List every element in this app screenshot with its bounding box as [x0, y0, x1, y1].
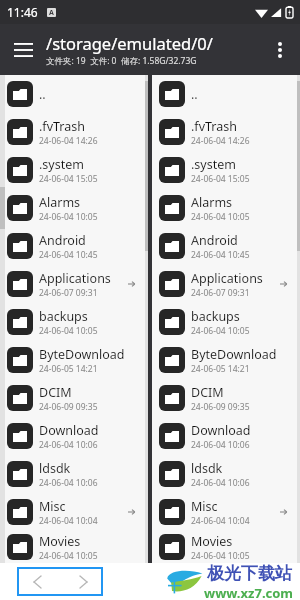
- button[interactable]: ..: [152, 75, 300, 113]
- staticText: ByteDownload: [191, 346, 277, 363]
- staticText: Download: [191, 422, 251, 439]
- staticText: Movies: [191, 533, 233, 550]
- staticText: backups: [191, 308, 240, 325]
- button[interactable]: Download: [152, 417, 300, 455]
- button[interactable]: backups: [0, 303, 148, 341]
- staticText: 24-06-04 15:05: [39, 173, 98, 185]
- staticText: 24-06-07 09:31: [191, 287, 250, 299]
- staticText: 24-06-04 10:05: [39, 325, 98, 337]
- staticText: 24-06-07 09:31: [39, 287, 98, 299]
- staticText: 24-06-04 14:26: [39, 135, 98, 147]
- staticText: ldsdk: [191, 460, 223, 477]
- staticText: 24-06-04 10:04: [39, 515, 98, 527]
- staticText: Android: [191, 232, 238, 249]
- staticText: .fvTrash: [39, 118, 85, 135]
- staticText: 24-06-04 15:05: [191, 173, 250, 185]
- button[interactable]: Open navigation drawer: [0, 27, 46, 73]
- staticText: Android: [39, 232, 86, 249]
- button[interactable]: More options: [260, 24, 300, 75]
- button[interactable]: Applications: [0, 265, 148, 303]
- button[interactable]: ldsdk: [152, 455, 300, 493]
- staticText: 24-06-05 14:21: [39, 363, 98, 375]
- button[interactable]: ByteDownload: [152, 341, 300, 379]
- button[interactable]: Back: [26, 571, 48, 593]
- staticText: 24-06-04 10:45: [191, 249, 250, 261]
- button[interactable]: Applications: [152, 265, 300, 303]
- button[interactable]: Back: [17, 567, 103, 596]
- staticText: .system: [191, 156, 236, 173]
- button[interactable]: Android: [152, 227, 300, 265]
- staticText: Misc: [191, 498, 218, 515]
- staticText: Movies: [39, 533, 81, 550]
- staticText: ByteDownload: [39, 346, 125, 363]
- staticText: 24-06-05 14:21: [191, 363, 250, 375]
- button[interactable]: Alarms: [152, 189, 300, 227]
- staticText: DCIM: [39, 384, 72, 401]
- button[interactable]: DCIM: [0, 379, 148, 417]
- staticText: Applications: [39, 270, 111, 287]
- button[interactable]: Alarms: [0, 189, 148, 227]
- staticText: DCIM: [191, 384, 224, 401]
- staticText: Alarms: [191, 194, 233, 211]
- staticText: 24-06-04 10:05: [191, 325, 250, 337]
- staticText: 文件夹: 19 文件: 0 储存: 1.58G/32.73G: [46, 55, 197, 67]
- staticText: 24-06-04 10:06: [191, 477, 250, 489]
- button[interactable]: ldsdk: [0, 455, 148, 493]
- staticText: ..: [191, 86, 198, 103]
- staticText: Download: [39, 422, 99, 439]
- staticText: ..: [39, 86, 46, 103]
- button[interactable]: .fvTrash: [152, 113, 300, 151]
- staticText: 24-06-04 10:06: [191, 439, 250, 451]
- button[interactable]: backups: [152, 303, 300, 341]
- staticText: 24-06-04 10:06: [39, 439, 98, 451]
- button[interactable]: Forward: [72, 571, 94, 593]
- staticText: 24-06-04 10:05: [191, 211, 250, 223]
- staticText: 极光下载站: [207, 563, 292, 584]
- staticText: 24-06-04 14:26: [191, 135, 250, 147]
- staticText: 24-06-04 10:05: [39, 211, 98, 223]
- button[interactable]: Misc: [152, 493, 300, 531]
- staticText: 24-06-04 10:06: [39, 477, 98, 489]
- button[interactable]: .system: [0, 151, 148, 189]
- staticText: Misc: [39, 498, 66, 515]
- staticText: 24-06-04 10:05: [39, 550, 98, 562]
- button[interactable]: DCIM: [152, 379, 300, 417]
- button[interactable]: ByteDownload: [0, 341, 148, 379]
- staticText: 24-06-09 09:35: [191, 401, 250, 413]
- staticText: 24-06-09 09:35: [39, 401, 98, 413]
- staticText: 11:46: [7, 4, 38, 20]
- staticText: backups: [39, 308, 88, 325]
- staticText: 24-06-04 10:45: [39, 249, 98, 261]
- staticText: 24-06-04 10:05: [191, 550, 250, 562]
- staticText: Applications: [191, 270, 263, 287]
- button[interactable]: .fvTrash: [0, 113, 148, 151]
- button[interactable]: ..: [0, 75, 148, 113]
- button[interactable]: Movies: [152, 531, 300, 563]
- staticText: ldsdk: [39, 460, 71, 477]
- staticText: www.xz7.com: [204, 584, 294, 600]
- button[interactable]: Misc: [0, 493, 148, 531]
- button[interactable]: Download: [0, 417, 148, 455]
- button[interactable]: .system: [152, 151, 300, 189]
- staticText: .system: [39, 156, 84, 173]
- staticText: Alarms: [39, 194, 81, 211]
- staticText: 24-06-04 10:04: [191, 515, 250, 527]
- button[interactable]: Android: [0, 227, 148, 265]
- staticText: A: [49, 8, 54, 17]
- staticText: /storage/emulated/0/: [46, 32, 213, 54]
- button[interactable]: Movies: [0, 531, 148, 563]
- staticText: .fvTrash: [191, 118, 237, 135]
